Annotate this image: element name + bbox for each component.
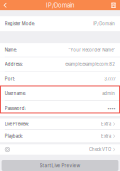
- staticText: Extra: [101, 121, 111, 127]
- button[interactable]: Password:: [0, 101, 120, 116]
- staticText: Start Live Preview: [39, 163, 80, 168]
- button[interactable]: Live Preview:: [0, 118, 120, 129]
- staticText: Username:: [5, 91, 26, 96]
- button[interactable]: Playback:: [0, 130, 120, 142]
- staticText: Register Mode:: [5, 21, 35, 26]
- button[interactable]: Start Live Preview: [2, 160, 118, 171]
- button[interactable]: Port:: [0, 71, 120, 87]
- button[interactable]: Username:: [0, 87, 120, 100]
- button[interactable]: Name:: [0, 43, 120, 57]
- staticText: ••••: [107, 106, 115, 111]
- button[interactable]: Address:: [0, 57, 120, 71]
- staticText: IP/Domain: [93, 21, 115, 26]
- staticText: Name:: [5, 47, 17, 53]
- staticText: "Your Recorder Name": [68, 47, 115, 53]
- staticText: Address:: [5, 62, 23, 67]
- staticText: Extra: [101, 134, 111, 139]
- staticText: Live Preview:: [5, 121, 29, 127]
- staticText: IP/Domain: [46, 2, 74, 9]
- staticText: admin: [102, 91, 115, 96]
- staticText: Password:: [5, 106, 26, 111]
- staticText: 37777: [104, 76, 115, 82]
- button[interactable]: Back: [0, 0, 10, 10]
- button[interactable]: Save: [107, 0, 120, 10]
- button[interactable]: Check VTO: [0, 144, 120, 155]
- staticText: example.example.com:82: [65, 62, 115, 67]
- staticText: Check VTO: [89, 147, 111, 152]
- staticText: Port:: [5, 76, 15, 82]
- staticText: Playback:: [5, 134, 23, 139]
- button[interactable]: Register Mode:: [0, 16, 120, 31]
